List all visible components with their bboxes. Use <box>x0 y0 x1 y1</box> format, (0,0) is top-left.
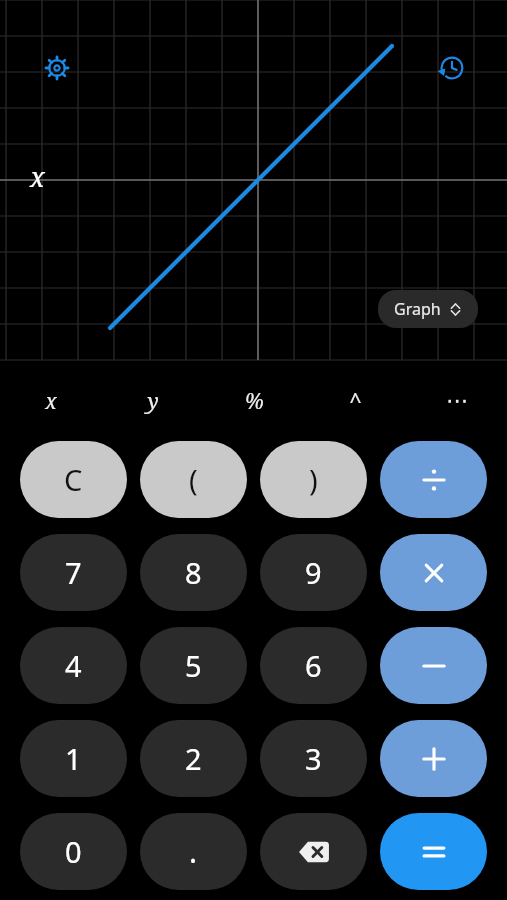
button[interactable]: 2 <box>140 720 247 797</box>
button[interactable]: 1 <box>20 720 127 797</box>
button[interactable]: Settings <box>35 46 79 90</box>
button[interactable]: 9 <box>260 534 367 611</box>
button[interactable]: Backspace <box>260 813 367 890</box>
staticText: 4 <box>65 646 82 685</box>
staticText: C <box>64 460 83 499</box>
staticText: ^ <box>349 387 362 416</box>
staticText: 5 <box>185 646 202 685</box>
staticText: 8 <box>185 553 202 592</box>
button[interactable]: ⋯ <box>406 373 507 429</box>
button[interactable] <box>380 720 487 797</box>
staticText: ( <box>189 460 198 499</box>
button[interactable] <box>380 627 487 704</box>
staticText: 1 <box>65 739 82 778</box>
button[interactable] <box>380 441 487 518</box>
button[interactable]: 0 <box>20 813 127 890</box>
button[interactable]: 5 <box>140 627 247 704</box>
button[interactable]: . <box>140 813 247 890</box>
button[interactable]: 7 <box>20 534 127 611</box>
staticText: % <box>245 387 264 416</box>
staticText: 0 <box>65 832 82 871</box>
staticText: Graph <box>394 298 441 320</box>
button[interactable]: % <box>204 373 305 429</box>
staticText: . <box>189 831 198 872</box>
button[interactable]: ( <box>140 441 247 518</box>
button[interactable]: 8 <box>140 534 247 611</box>
button[interactable]: x <box>0 373 102 429</box>
button[interactable]: Graph <box>378 290 478 328</box>
button[interactable]: y <box>102 373 204 429</box>
staticText: x <box>30 158 45 195</box>
button[interactable]: History <box>430 46 474 90</box>
staticText: x <box>45 387 57 416</box>
button[interactable]: ^ <box>305 373 406 429</box>
staticText: ⋯ <box>446 388 468 414</box>
staticText: 3 <box>305 739 322 778</box>
staticText: 6 <box>305 646 322 685</box>
button[interactable]: 3 <box>260 720 367 797</box>
staticText: y <box>147 387 159 416</box>
staticText: 9 <box>305 553 322 592</box>
button[interactable] <box>380 813 487 890</box>
staticText: ) <box>309 460 318 499</box>
button[interactable]: ) <box>260 441 367 518</box>
staticText: 7 <box>65 553 82 592</box>
staticText: 2 <box>185 739 202 778</box>
button[interactable] <box>380 534 487 611</box>
button[interactable]: C <box>20 441 127 518</box>
button[interactable]: 4 <box>20 627 127 704</box>
button[interactable]: 6 <box>260 627 367 704</box>
